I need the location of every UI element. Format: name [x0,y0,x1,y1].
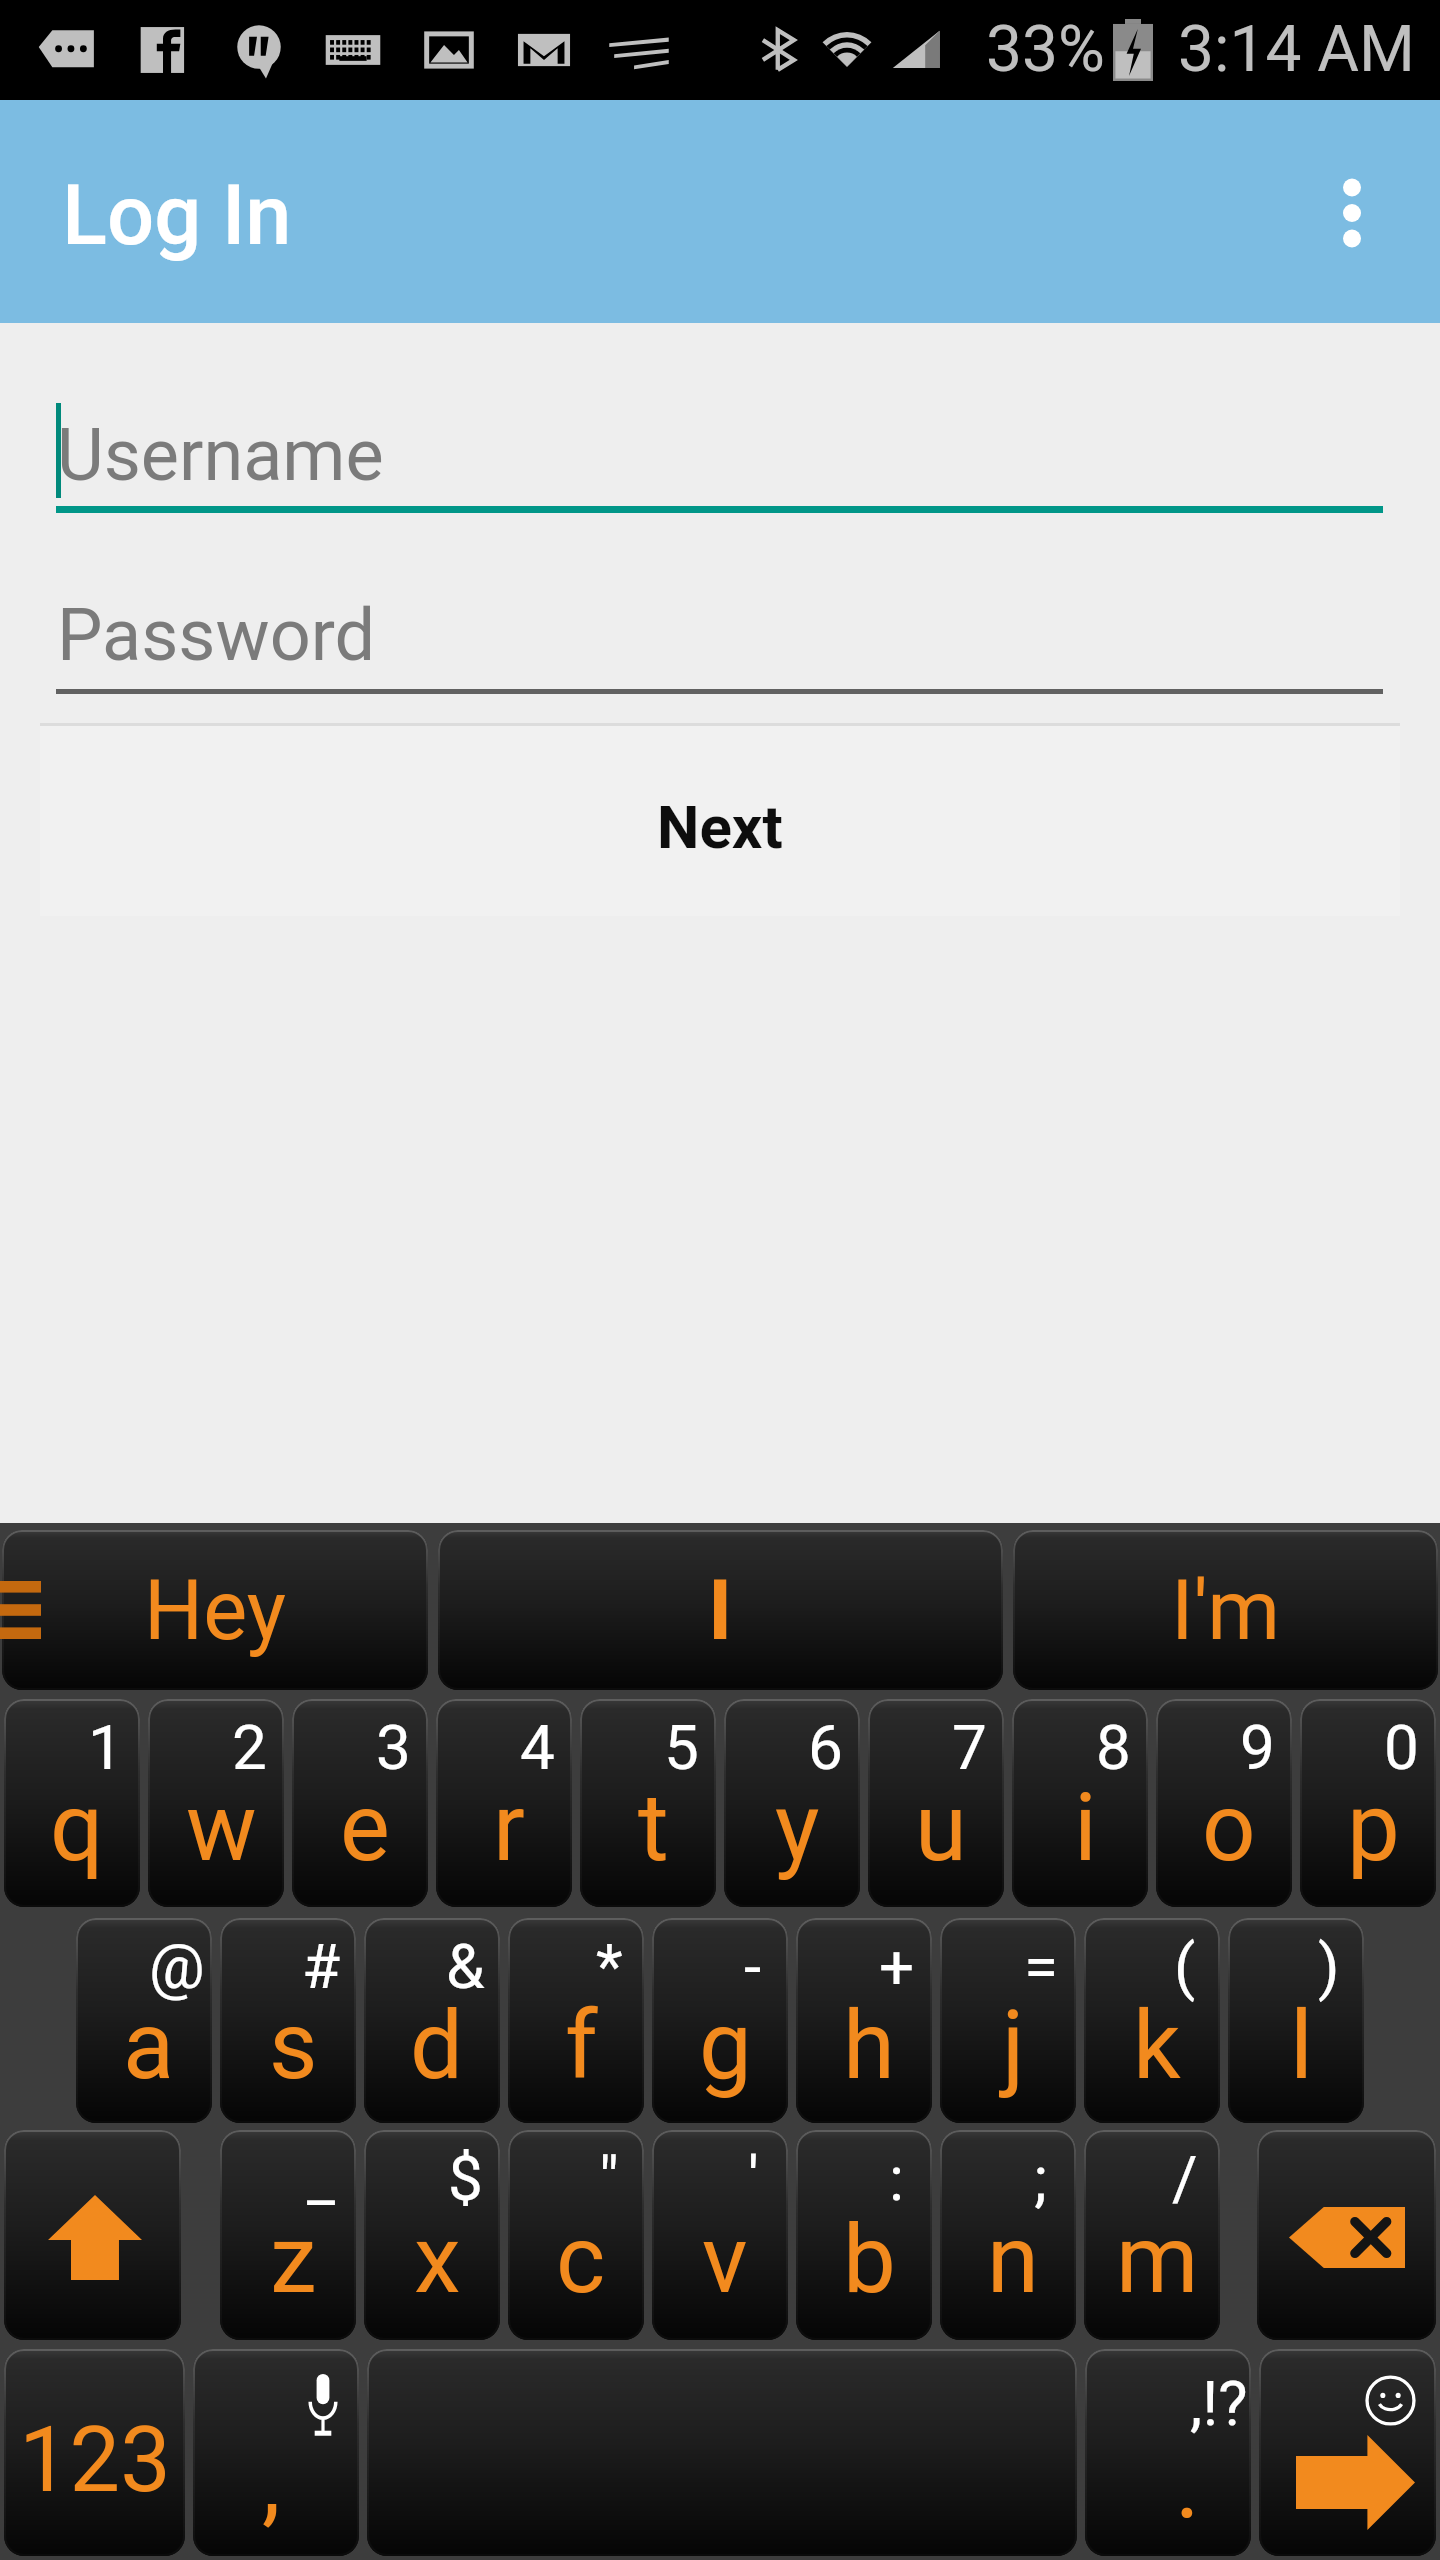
staticText: @ [149,1930,205,2003]
button[interactable]: # [220,1918,356,2123]
button[interactable]: Hey [2,1530,428,1690]
staticText: p [1347,1773,1400,1883]
button[interactable]: & [364,1918,500,2123]
staticText: 123 [19,2408,171,2513]
staticText: ( [1174,1930,1196,2003]
button[interactable]: Next [40,723,1400,916]
button[interactable]: More options [1296,157,1406,267]
staticText: g [699,1991,752,2101]
button[interactable]: ( [1084,1918,1220,2123]
staticText: I'm [1171,1562,1281,1659]
staticText: w [186,1773,257,1883]
staticText: i [1074,1773,1097,1883]
staticText: . [1175,2430,1200,2540]
staticText: c [556,2205,606,2315]
button[interactable]: Numbers and symbols [4,2349,185,2556]
staticText: x [414,2205,461,2315]
button[interactable]: 4 [436,1699,572,1907]
staticText: - [744,1930,762,2003]
button[interactable]: ' [652,2130,788,2340]
staticText: 1 [88,1711,123,1784]
staticText: Username [57,413,384,497]
staticText: / [1172,2142,1198,2215]
staticText: 0 [1384,1711,1419,1784]
staticText: m [1116,2205,1199,2315]
button[interactable]: = [940,1918,1076,2123]
button[interactable]: 5 [580,1699,716,1907]
staticText: b [843,2205,896,2315]
staticText: ,!? [1190,2367,1248,2440]
button[interactable]: Space [367,2349,1077,2556]
button[interactable]: / [1084,2130,1220,2340]
button[interactable]: 7 [868,1699,1004,1907]
button[interactable]: Emoji and Enter [1259,2349,1436,2556]
staticText: _ [307,2142,335,2215]
staticText: , [262,2427,281,2537]
staticText: Next [657,792,783,862]
button[interactable]: Keyboard menu [0,1581,41,1639]
staticText: o [1202,1773,1256,1883]
button[interactable]: - [652,1918,788,2123]
button[interactable]: Username [57,383,1383,518]
button[interactable]: ) [1228,1918,1364,2123]
button[interactable]: : [796,2130,932,2340]
staticText: ; [1034,2142,1048,2215]
staticText: 5 [664,1711,699,1784]
staticText: 8 [1096,1711,1131,1784]
staticText: r [493,1773,525,1883]
staticText: e [340,1773,390,1883]
button[interactable]: I [438,1530,1003,1690]
button[interactable]: ; [940,2130,1076,2340]
button[interactable]: @ [76,1918,212,2123]
button[interactable]: Backspace [1257,2130,1436,2340]
staticText: # [302,1930,341,2003]
staticText: v [702,2205,748,2315]
staticText: : [889,2142,905,2215]
staticText: y [775,1773,820,1883]
staticText: 7 [952,1711,987,1784]
staticText: a [123,1991,175,2101]
button[interactable]: Shift [4,2130,181,2340]
staticText: 3:14 AM [1178,12,1415,87]
staticText: s [269,1991,318,2101]
staticText: t [638,1773,669,1883]
staticText: 33% [986,12,1105,87]
button[interactable]: 0 [1300,1699,1436,1907]
staticText: Log In [62,167,292,264]
staticText: 3 [376,1711,411,1784]
button[interactable]: 1 [4,1699,140,1907]
staticText: I [708,1562,733,1659]
button[interactable]: I'm [1013,1530,1438,1690]
button[interactable]: 9 [1156,1699,1292,1907]
button[interactable]: Voice input and comma [193,2349,359,2556]
staticText: 2 [232,1711,267,1784]
staticText: 6 [808,1711,843,1784]
button[interactable]: + [796,1918,932,2123]
button[interactable]: Password [57,563,1383,698]
staticText: & [446,1930,485,2003]
staticText: " [599,2142,619,2215]
button[interactable]: 2 [148,1699,284,1907]
staticText: 4 [520,1711,555,1784]
staticText: f [565,1991,598,2101]
staticText: l [1290,1991,1313,2101]
staticText: = [1024,1930,1059,2003]
staticText: k [1133,1991,1181,2101]
button[interactable]: * [508,1918,644,2123]
staticText: + [879,1930,915,2003]
staticText: j [1002,1991,1025,2101]
button[interactable]: 6 [724,1699,860,1907]
button[interactable]: Period and punctuation [1085,2349,1251,2556]
staticText: Password [57,593,376,677]
button[interactable]: _ [220,2130,356,2340]
button[interactable]: 3 [292,1699,428,1907]
staticText: q [50,1773,104,1883]
staticText: * [596,1930,623,2003]
staticText: Hey [144,1562,286,1659]
button[interactable]: " [508,2130,644,2340]
staticText: d [410,1991,464,2101]
button[interactable]: 8 [1012,1699,1148,1907]
button[interactable]: $ [364,2130,500,2340]
staticText: ' [748,2142,759,2215]
staticText: 9 [1240,1711,1275,1784]
